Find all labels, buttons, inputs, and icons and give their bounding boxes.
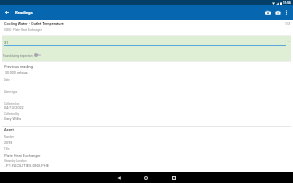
staticText: Previous reading [4,64,33,69]
staticText: Collected on [4,102,20,105]
button[interactable]: Found during inspection [3,53,41,57]
staticText: Found during inspection [3,54,33,57]
staticText: 31 [4,40,9,45]
button[interactable]: Home [136,172,156,183]
button[interactable]: Take photo [262,5,274,20]
staticText: 1/3 [285,22,291,26]
staticText: Readings [15,10,33,15]
staticText: Cooling Water - Outlet Temperature [4,22,64,26]
button[interactable]: Navigate up [0,5,14,20]
staticText: Collected by [4,112,20,115]
staticText: 2093 [4,141,13,145]
staticText: 11:56 [283,1,291,5]
button[interactable]: More options [281,5,292,20]
staticText: Title [4,147,10,150]
staticText: Gary Willis [4,117,22,121]
staticText: 0008 - Plate Heat Exchanger [4,28,42,32]
staticText: Plate Heat Exchanger [4,153,41,158]
button[interactable]: 31 [2,36,291,61]
staticText: Asset [4,128,14,132]
staticText: ..P1.FACILITIES.DNS.PHE [4,163,50,168]
staticText: 04/13/2022 [4,106,24,110]
staticText: 30.000 celsius [5,71,28,75]
staticText: °C [287,40,290,43]
staticText: Alarm type [4,90,18,93]
staticText: Hierarchy Location [4,159,27,162]
button[interactable]: Recent apps [164,172,184,183]
staticText: Number [4,135,14,138]
button[interactable]: Back [109,172,129,183]
staticText: Date [4,78,10,81]
button[interactable]: Work order [272,5,283,20]
